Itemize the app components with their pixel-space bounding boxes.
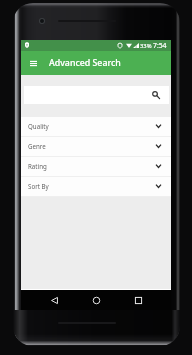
button[interactable]: Back — [46, 292, 62, 308]
button[interactable]: Quality — [21, 117, 171, 136]
staticText: 33% — [140, 42, 152, 50]
button[interactable]: Home — [88, 292, 104, 308]
staticText: Quality — [28, 122, 49, 130]
button[interactable]: Rating — [21, 157, 171, 176]
staticText: Sort By — [28, 182, 49, 190]
staticText: 7:54 — [153, 41, 167, 50]
staticText: Advanced Search — [49, 57, 121, 69]
staticText: Genre — [28, 142, 46, 150]
button[interactable]: Open navigation menu — [24, 54, 42, 72]
button[interactable]: Genre — [21, 137, 171, 156]
staticText: Rating — [28, 162, 47, 170]
button[interactable]: Search — [24, 86, 169, 104]
button[interactable]: Sort By — [21, 177, 171, 196]
button[interactable]: Recent apps — [130, 292, 146, 308]
